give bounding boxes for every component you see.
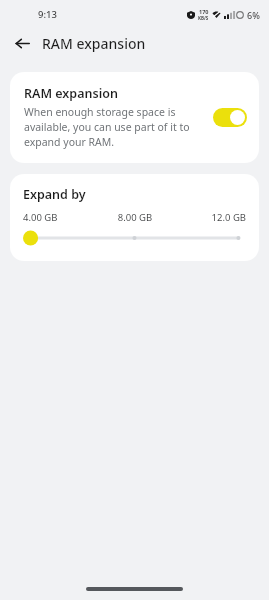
staticText: 12.0 GB xyxy=(172,211,246,224)
button[interactable]: RAM expansion toggle xyxy=(213,108,247,127)
staticText: 170 xyxy=(199,8,209,15)
staticText: RAM expansion xyxy=(42,34,146,53)
staticText: RAM expansion xyxy=(24,85,118,102)
staticText: When enough storage space is available, … xyxy=(24,105,205,149)
staticText: 8.00 GB xyxy=(98,211,172,224)
button[interactable]: RAM expansion xyxy=(10,72,259,163)
staticText: 4.00 GB xyxy=(23,211,98,224)
staticText: 6% xyxy=(247,9,260,21)
staticText: KB/S xyxy=(198,15,209,21)
staticText: 9:13 xyxy=(38,8,57,21)
button[interactable]: Back xyxy=(8,29,36,57)
button[interactable]: Expand by slider xyxy=(23,229,246,247)
staticText: Expand by xyxy=(23,186,86,203)
